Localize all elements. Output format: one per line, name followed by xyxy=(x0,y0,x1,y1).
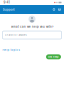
button[interactable]: Support xyxy=(0,5,17,14)
staticText: 9:41 xyxy=(3,1,9,4)
button[interactable]: Bag xyxy=(57,5,62,14)
staticText: Search for answers xyxy=(4,33,26,37)
staticText: Support xyxy=(3,8,15,11)
button[interactable]: Search for answers xyxy=(2,31,61,39)
staticText: Get help xyxy=(48,55,59,58)
button[interactable]: Search xyxy=(51,5,57,14)
staticText: What can we help you with? xyxy=(11,25,53,28)
button[interactable]: Help topics xyxy=(2,48,19,52)
staticText: Help topics xyxy=(2,48,19,52)
button[interactable]: Get help xyxy=(46,54,61,59)
